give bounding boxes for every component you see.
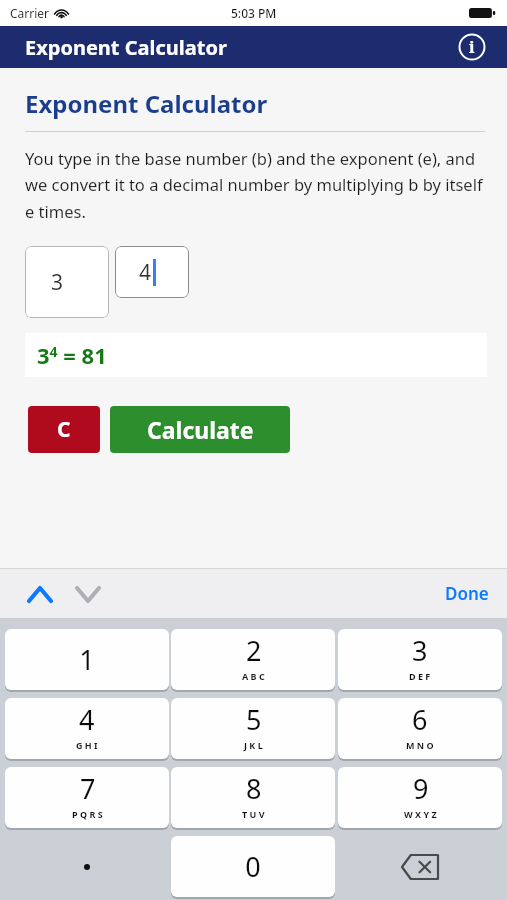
staticText: 5:03 PM [231,5,277,21]
staticText: 0 [245,848,261,885]
button[interactable]: C [28,406,100,453]
button[interactable]: Previous field [22,576,58,612]
button[interactable]: Decimal point [5,836,169,897]
staticText: J K L [244,739,263,751]
button[interactable]: Done [445,582,489,605]
button[interactable]: 7 [5,767,169,828]
staticText: 34 = 81 [37,340,107,370]
button[interactable]: 3 [25,246,109,318]
staticText: D E F [409,670,431,682]
staticText: Carrier [10,5,50,21]
staticText: 4 [79,701,95,738]
button[interactable]: Calculate [110,406,290,453]
staticText: C [57,415,71,444]
staticText: 9 [413,770,429,807]
button[interactable]: 1 [5,629,169,690]
button[interactable]: 8 [171,767,335,828]
button[interactable]: Info [457,32,487,62]
staticText: You type in the base number (b) and the … [25,147,489,223]
staticText: 8 [246,770,262,807]
staticText: 1 [79,641,95,678]
button[interactable]: Backspace [338,836,502,897]
staticText: 4 [139,258,152,287]
staticText: A B C [242,670,265,682]
staticText: Exponent Calculator [25,34,227,61]
button[interactable]: 3 [338,629,502,690]
button[interactable]: 5 [171,698,335,759]
staticText: Exponent Calculator [25,87,268,120]
staticText: Done [445,582,489,605]
staticText: Calculate [147,414,254,445]
staticText: 5 [246,701,262,738]
staticText: 3 [412,632,428,669]
staticText: 2 [246,632,262,669]
button[interactable]: 4 [115,246,189,298]
staticText: G H I [76,739,98,751]
button[interactable]: Next field [70,576,106,612]
staticText: T U V [242,808,265,820]
staticText: W X Y Z [404,808,437,820]
button[interactable]: 6 [338,698,502,759]
staticText: M N O [406,739,434,751]
button[interactable]: 2 [171,629,335,690]
staticText: i [469,36,475,58]
staticText: P Q R S [72,808,103,820]
button[interactable]: 9 [338,767,502,828]
staticText: 3 [51,268,64,297]
staticText: 6 [412,701,428,738]
staticText: 7 [80,770,96,807]
button[interactable]: 4 [5,698,169,759]
button[interactable]: 0 [171,836,335,897]
